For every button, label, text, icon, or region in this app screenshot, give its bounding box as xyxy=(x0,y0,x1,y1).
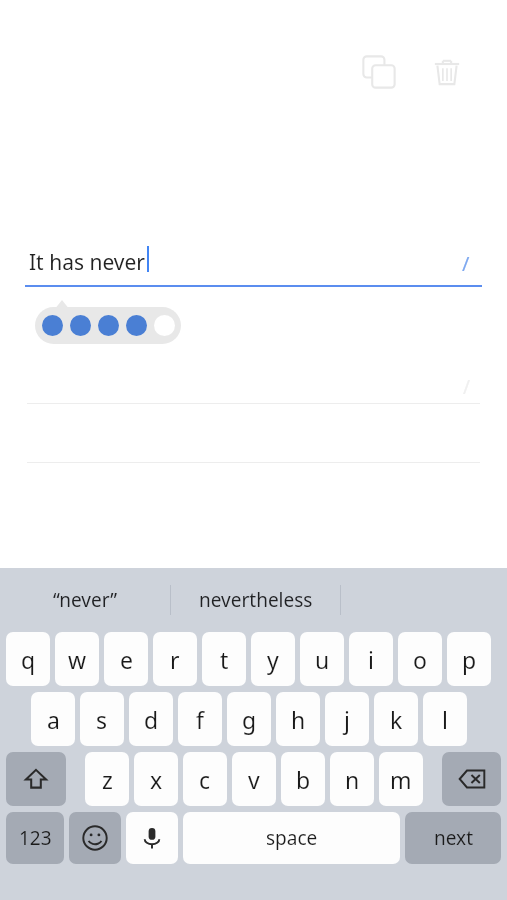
button[interactable]: a xyxy=(31,692,75,746)
button[interactable]: Copy xyxy=(355,48,403,96)
button[interactable]: i xyxy=(349,632,393,686)
button[interactable]: s xyxy=(80,692,124,746)
button[interactable]: Delete xyxy=(423,48,471,96)
staticText: It has never xyxy=(29,248,146,277)
button[interactable]: next xyxy=(405,812,501,864)
button[interactable]: f xyxy=(178,692,222,746)
button[interactable]: u xyxy=(300,632,344,686)
button[interactable]: “never” xyxy=(0,568,170,632)
staticText: b xyxy=(296,764,311,795)
staticText: / xyxy=(462,250,470,277)
button[interactable]: q xyxy=(6,632,50,686)
staticText: m xyxy=(390,764,412,795)
button[interactable]: Emoji xyxy=(69,812,121,864)
staticText: w xyxy=(68,644,87,675)
button[interactable]: g xyxy=(227,692,271,746)
button[interactable]: y xyxy=(251,632,295,686)
button[interactable]: v xyxy=(232,752,276,806)
staticText: g xyxy=(242,704,257,735)
button[interactable]: j xyxy=(325,692,369,746)
staticText: s xyxy=(96,704,108,735)
button[interactable]: z xyxy=(85,752,129,806)
staticText: nevertheless xyxy=(199,587,313,613)
staticText: o xyxy=(413,644,427,675)
button[interactable]: b xyxy=(281,752,325,806)
button[interactable]: e xyxy=(104,632,148,686)
staticText: z xyxy=(102,764,113,795)
staticText: l xyxy=(442,704,448,735)
staticText: / xyxy=(463,374,471,400)
staticText: e xyxy=(120,644,133,675)
button[interactable]: Backspace xyxy=(442,752,501,806)
button[interactable]: p xyxy=(447,632,491,686)
button[interactable]: o xyxy=(398,632,442,686)
button[interactable]: space xyxy=(183,812,400,864)
staticText: q xyxy=(21,644,36,675)
button[interactable]: k xyxy=(374,692,418,746)
button[interactable]: m xyxy=(379,752,423,806)
button[interactable]: x xyxy=(134,752,178,806)
staticText: x xyxy=(150,764,163,795)
staticText: n xyxy=(345,764,360,795)
staticText: d xyxy=(144,704,159,735)
button[interactable]: h xyxy=(276,692,320,746)
staticText: space xyxy=(266,825,318,851)
button[interactable]: d xyxy=(129,692,173,746)
staticText: c xyxy=(199,764,211,795)
button[interactable]: nevertheless xyxy=(171,568,340,632)
button[interactable]: t xyxy=(202,632,246,686)
staticText: y xyxy=(267,644,279,675)
button[interactable]: n xyxy=(330,752,374,806)
button[interactable]: l xyxy=(423,692,467,746)
staticText: v xyxy=(248,764,260,795)
staticText: u xyxy=(315,644,330,675)
button[interactable]: c xyxy=(183,752,227,806)
staticText: j xyxy=(344,704,350,735)
staticText: p xyxy=(462,644,477,675)
staticText: t xyxy=(220,644,229,675)
staticText: h xyxy=(291,704,306,735)
staticText: f xyxy=(196,704,204,735)
button[interactable]: w xyxy=(55,632,99,686)
button[interactable]: Shift xyxy=(6,752,66,806)
button[interactable]: Voice input xyxy=(126,812,178,864)
button[interactable]: 123 xyxy=(6,812,64,864)
staticText: k xyxy=(390,704,403,735)
staticText: i xyxy=(368,644,374,675)
button[interactable] xyxy=(35,307,181,344)
staticText: 123 xyxy=(19,825,52,851)
staticText: r xyxy=(170,644,180,675)
staticText: next xyxy=(434,825,473,851)
staticText: “never” xyxy=(53,587,118,613)
button[interactable]: r xyxy=(153,632,197,686)
staticText: a xyxy=(47,704,60,735)
